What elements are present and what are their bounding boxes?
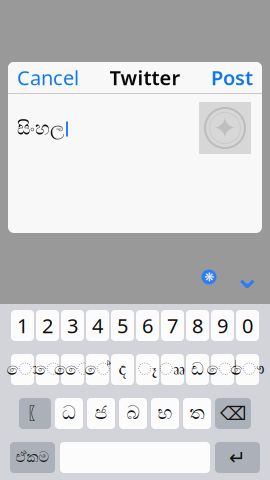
- staticText: 7: [167, 312, 178, 339]
- button[interactable]: 8: [186, 310, 209, 341]
- staticText: ෞ: [230, 361, 264, 378]
- button[interactable]: ජ: [87, 398, 115, 429]
- button[interactable]: 9: [211, 310, 234, 341]
- staticText: ෝ: [206, 361, 238, 378]
- staticText: 2: [42, 312, 53, 339]
- staticText: ✦: [212, 111, 237, 145]
- button[interactable]: 0: [236, 310, 259, 341]
- staticText: ❋: [204, 270, 214, 284]
- button[interactable]: ධ: [55, 398, 83, 429]
- staticText: ේ: [84, 361, 110, 378]
- button[interactable]: 5: [111, 310, 134, 341]
- button[interactable]: 2: [36, 310, 59, 341]
- staticText: ⌫: [220, 403, 246, 424]
- staticText: ෙ: [34, 361, 60, 378]
- staticText: 5: [117, 312, 128, 339]
- button[interactable]: ෙ: [36, 354, 59, 385]
- staticText: Cancel: [17, 64, 79, 91]
- button[interactable]: 〖: [19, 398, 51, 429]
- staticText: ↵: [229, 446, 246, 469]
- button[interactable]: ො: [11, 354, 34, 385]
- button[interactable]: Hide keyboard: [235, 265, 259, 289]
- staticText: ඩ: [191, 361, 204, 378]
- button[interactable]: ෛ: [61, 354, 84, 385]
- button[interactable]: 7: [161, 310, 184, 341]
- button[interactable]: 6: [136, 310, 159, 341]
- button[interactable]: භ: [151, 398, 179, 429]
- staticText: 3: [67, 312, 78, 339]
- button[interactable]: බ: [119, 398, 147, 429]
- staticText: ජ: [94, 404, 107, 423]
- button[interactable]: ත: [183, 398, 211, 429]
- staticText: 6: [142, 312, 153, 339]
- button[interactable]: ඒකම: [10, 442, 55, 473]
- staticText: ෛ: [54, 361, 91, 378]
- staticText: ත: [189, 404, 204, 423]
- staticText: 1: [17, 312, 28, 339]
- button[interactable]: Cancel: [8, 58, 88, 97]
- staticText: ධ: [62, 404, 76, 423]
- button[interactable]: ↵: [215, 442, 260, 473]
- staticText: Twitter: [109, 64, 180, 91]
- button[interactable]: ෲ: [161, 354, 184, 385]
- button[interactable]: ⌫: [215, 398, 251, 429]
- button[interactable]: 3: [61, 310, 84, 341]
- button[interactable]: ඩ: [186, 354, 209, 385]
- staticText: භ: [157, 404, 172, 423]
- staticText: ෑ: [138, 361, 157, 378]
- button[interactable]: ෝ: [211, 354, 234, 385]
- button[interactable]: Post: [202, 58, 262, 97]
- staticText: ො: [6, 361, 38, 378]
- button[interactable]: ද: [111, 354, 134, 385]
- button[interactable]: Audience: [197, 265, 221, 289]
- staticText: සිංහල: [17, 120, 64, 138]
- button[interactable]: 1: [11, 310, 34, 341]
- button[interactable]: ේ: [86, 354, 109, 385]
- staticText: 8: [192, 312, 203, 339]
- staticText: ඒකම: [15, 450, 49, 465]
- staticText: ෲ: [159, 361, 185, 378]
- staticText: 9: [217, 312, 228, 339]
- button[interactable]: ෑ: [136, 354, 159, 385]
- button[interactable]: 4: [86, 310, 109, 341]
- staticText: Post: [211, 64, 253, 91]
- staticText: බ: [126, 404, 139, 423]
- staticText: ද: [118, 361, 126, 378]
- staticText: ⌄: [233, 259, 260, 295]
- staticText: 〖: [26, 403, 43, 424]
- button[interactable]: ෞ: [236, 354, 259, 385]
- staticText: 0: [242, 312, 253, 339]
- staticText: 4: [92, 312, 103, 339]
